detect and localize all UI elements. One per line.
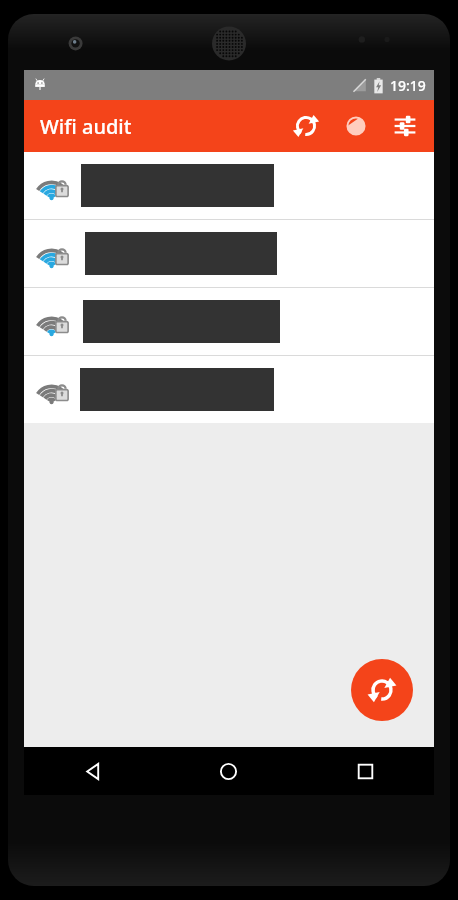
button[interactable]: Recent apps (297, 747, 434, 795)
button[interactable]: Home (160, 747, 297, 795)
button[interactable] (24, 288, 434, 355)
staticText: Wifi audit (40, 113, 132, 140)
button[interactable]: Rescan networks (351, 659, 413, 721)
button[interactable]: Contrast (332, 100, 380, 152)
button[interactable] (24, 152, 434, 219)
button[interactable]: Refresh (280, 100, 332, 152)
button[interactable] (24, 220, 434, 287)
button[interactable] (24, 356, 434, 423)
button[interactable]: Filter settings (380, 100, 430, 152)
button[interactable]: Back (24, 747, 160, 795)
staticText: 19:19 (390, 76, 426, 95)
